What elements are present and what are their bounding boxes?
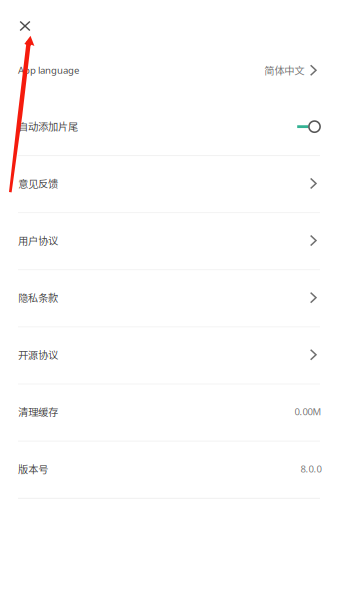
staticText: 用户协议 xyxy=(18,233,58,248)
staticText: 版本号 xyxy=(18,461,48,476)
button[interactable]: 隐私条款 xyxy=(0,270,337,326)
button[interactable]: 版本号 xyxy=(0,442,337,498)
button[interactable]: Close xyxy=(8,9,42,43)
staticText: 自动添加片尾 xyxy=(18,119,78,133)
button[interactable]: 清理缓存 xyxy=(0,385,337,441)
staticText: 意见反馈 xyxy=(18,176,58,191)
button[interactable]: 自动添加片尾 xyxy=(0,99,337,155)
button[interactable]: App language xyxy=(0,43,337,99)
staticText: 清理缓存 xyxy=(18,404,58,419)
staticText: App language xyxy=(18,63,79,76)
staticText: 8.0.0 xyxy=(300,462,321,475)
button[interactable]: 开源协议 xyxy=(0,327,337,384)
button[interactable]: 意见反馈 xyxy=(0,156,337,212)
button[interactable]: 用户协议 xyxy=(0,213,337,269)
staticText: 开源协议 xyxy=(18,347,58,362)
staticText: 简体中文 xyxy=(264,62,304,77)
staticText: 隐私条款 xyxy=(18,290,58,305)
staticText: 0.00M xyxy=(294,405,321,418)
